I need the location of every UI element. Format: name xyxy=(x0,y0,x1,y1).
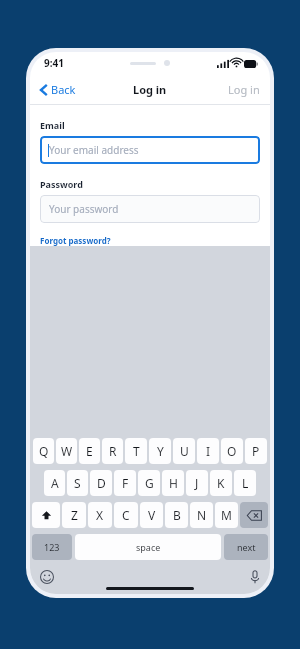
button[interactable]: E xyxy=(79,438,100,464)
staticText: next xyxy=(237,541,256,553)
staticText: X xyxy=(96,507,104,523)
button[interactable]: Backspace xyxy=(240,502,268,528)
staticText: 123 xyxy=(44,541,60,553)
staticText: O xyxy=(227,443,237,459)
staticText: S xyxy=(74,475,81,491)
button[interactable]: T xyxy=(125,438,147,464)
button[interactable]: Q xyxy=(33,438,54,464)
button[interactable]: K xyxy=(210,470,232,496)
staticText: K xyxy=(217,475,225,491)
button[interactable]: V xyxy=(140,502,163,528)
button[interactable]: C xyxy=(114,502,138,528)
staticText: I xyxy=(206,443,211,459)
staticText: A xyxy=(51,475,59,491)
button[interactable]: M xyxy=(215,502,238,528)
staticText: Your email address xyxy=(49,143,139,157)
staticText: L xyxy=(242,475,249,491)
button[interactable]: P xyxy=(245,438,267,464)
button[interactable]: Forgot password? xyxy=(40,235,111,246)
button[interactable]: Log in xyxy=(218,77,270,102)
staticText: Email xyxy=(40,119,65,131)
staticText: W xyxy=(61,443,73,459)
button[interactable]: Your password xyxy=(40,195,260,223)
button[interactable]: space xyxy=(75,534,221,560)
button[interactable]: O xyxy=(221,438,243,464)
staticText: B xyxy=(173,507,181,523)
button[interactable]: A xyxy=(44,470,65,496)
button[interactable]: X xyxy=(88,502,112,528)
button[interactable]: G xyxy=(138,470,160,496)
button[interactable]: B xyxy=(165,502,188,528)
button[interactable]: Shift xyxy=(32,502,60,528)
staticText: 9:41 xyxy=(44,56,64,70)
staticText: Q xyxy=(39,443,49,459)
staticText: G xyxy=(145,475,154,491)
staticText: J xyxy=(195,475,199,491)
button[interactable]: Back xyxy=(38,78,78,101)
staticText: U xyxy=(180,443,189,459)
button[interactable]: Z xyxy=(62,502,86,528)
button[interactable]: H xyxy=(162,470,184,496)
staticText: H xyxy=(169,475,178,491)
staticText: Y xyxy=(157,443,164,459)
staticText: Back xyxy=(51,82,76,97)
button[interactable]: next xyxy=(224,534,268,560)
staticText: Your password xyxy=(49,202,119,216)
staticText: V xyxy=(148,507,156,523)
staticText: M xyxy=(221,507,232,523)
button[interactable]: S xyxy=(67,470,88,496)
button[interactable]: D xyxy=(90,470,112,496)
button[interactable]: I xyxy=(197,438,219,464)
button[interactable]: Dictate xyxy=(250,570,260,584)
button[interactable]: Emoji xyxy=(40,570,54,584)
button[interactable]: W xyxy=(56,438,77,464)
button[interactable]: Your email address xyxy=(40,136,260,164)
staticText: N xyxy=(197,507,207,523)
staticText: R xyxy=(109,443,117,459)
staticText: Log in xyxy=(133,82,167,97)
staticText: Password xyxy=(40,178,83,190)
button[interactable]: Y xyxy=(149,438,171,464)
button[interactable]: R xyxy=(102,438,123,464)
staticText: E xyxy=(86,443,93,459)
staticText: D xyxy=(97,475,106,491)
button[interactable]: 123 xyxy=(32,534,72,560)
staticText: P xyxy=(252,443,260,459)
staticText: space xyxy=(136,541,161,553)
staticText: T xyxy=(133,443,140,459)
button[interactable]: N xyxy=(190,502,213,528)
button[interactable]: F xyxy=(114,470,136,496)
button[interactable]: U xyxy=(173,438,195,464)
staticText: C xyxy=(122,507,130,523)
button[interactable]: J xyxy=(186,470,208,496)
staticText: F xyxy=(122,475,129,491)
staticText: Z xyxy=(71,507,78,523)
button[interactable]: L xyxy=(234,470,256,496)
